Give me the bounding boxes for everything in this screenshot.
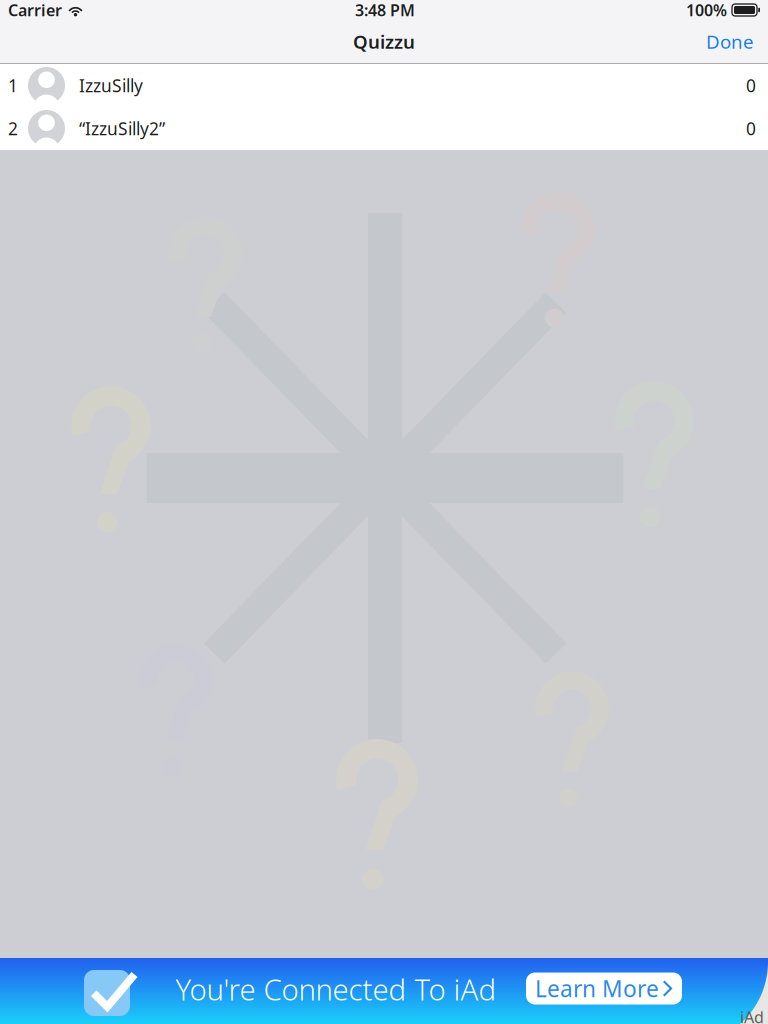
staticText: Quizzu: [353, 29, 415, 54]
staticText: Done: [706, 29, 754, 54]
button[interactable]: 2: [0, 107, 768, 150]
staticText: You're Connected To iAd: [175, 969, 496, 1008]
staticText: 2: [8, 117, 18, 140]
button[interactable]: Done: [692, 19, 768, 63]
button[interactable]: 1: [0, 64, 768, 107]
staticText: 3:48 PM: [355, 0, 415, 21]
staticText: 0: [746, 117, 756, 140]
button[interactable]: iAd: [0, 958, 768, 1024]
staticText: “IzzuSilly2”: [79, 117, 165, 140]
staticText: 100%: [686, 0, 727, 21]
staticText: Carrier: [8, 0, 62, 21]
staticText: Learn More: [535, 973, 659, 1003]
staticText: 0: [746, 74, 756, 97]
staticText: 1: [8, 74, 18, 97]
staticText: iAd: [740, 1006, 764, 1024]
staticText: IzzuSilly: [79, 74, 143, 97]
